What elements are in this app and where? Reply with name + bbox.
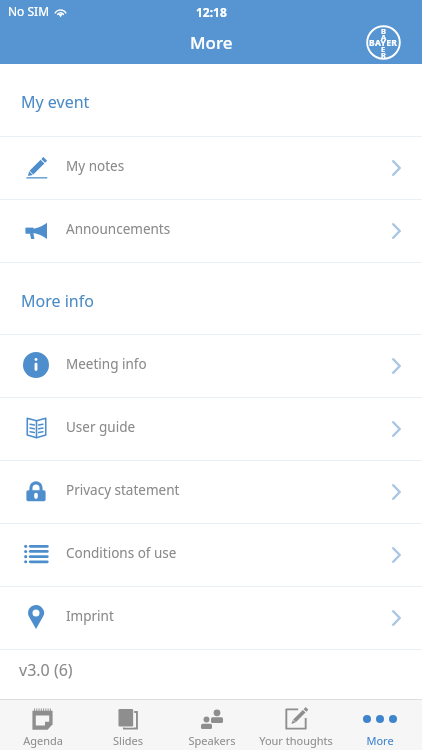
button[interactable]: Slides bbox=[85, 700, 170, 750]
button[interactable]: Imprint bbox=[0, 587, 422, 649]
button[interactable]: Agenda bbox=[0, 700, 85, 750]
staticText: User guide bbox=[66, 418, 136, 436]
staticText: R bbox=[381, 50, 386, 60]
staticText: E bbox=[381, 44, 386, 54]
staticText: Agenda bbox=[23, 733, 63, 748]
staticText: Slides bbox=[113, 733, 143, 748]
staticText: Privacy statement bbox=[66, 481, 180, 499]
button[interactable]: Bayer logo bbox=[366, 25, 401, 60]
staticText: Announcements bbox=[66, 220, 171, 238]
button[interactable]: Speakers bbox=[170, 700, 254, 750]
staticText: No SIM bbox=[8, 3, 50, 19]
staticText: 12:18 bbox=[196, 4, 227, 20]
staticText: Conditions of use bbox=[66, 544, 177, 562]
staticText: BAYER bbox=[369, 37, 398, 49]
button[interactable]: Announcements bbox=[0, 200, 422, 262]
staticText: My notes bbox=[66, 157, 125, 175]
staticText: v3.0 (6) bbox=[19, 659, 73, 681]
staticText: More bbox=[190, 31, 233, 54]
staticText: More bbox=[366, 733, 394, 748]
button[interactable]: Your thoughts bbox=[254, 700, 338, 750]
button[interactable]: My notes bbox=[0, 137, 422, 199]
button[interactable]: Meeting info bbox=[0, 335, 422, 397]
staticText: Imprint bbox=[66, 607, 114, 625]
staticText: Your thoughts bbox=[259, 733, 333, 748]
staticText: A bbox=[381, 32, 387, 42]
button[interactable]: More bbox=[338, 700, 422, 750]
staticText: Speakers bbox=[188, 733, 236, 748]
button[interactable]: Privacy statement bbox=[0, 461, 422, 523]
staticText: More info bbox=[21, 290, 94, 312]
button[interactable]: Conditions of use bbox=[0, 524, 422, 586]
staticText: Meeting info bbox=[66, 355, 147, 373]
button[interactable]: User guide bbox=[0, 398, 422, 460]
staticText: B bbox=[381, 26, 386, 36]
staticText: My event bbox=[21, 91, 90, 113]
